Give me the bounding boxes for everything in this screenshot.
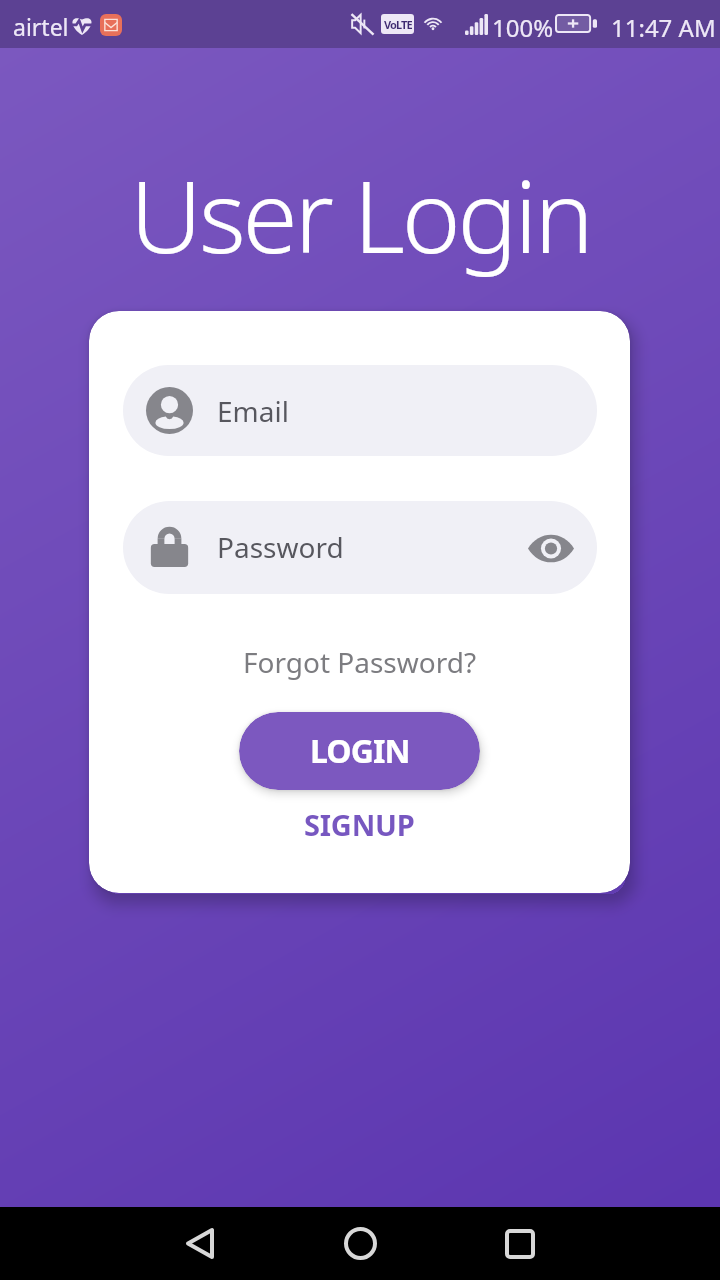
- button[interactable]: SIGNUP: [296, 802, 423, 847]
- button[interactable]: Recents: [485, 1207, 555, 1280]
- staticText: User Login: [130, 146, 591, 282]
- staticText: 11:47 AM: [611, 11, 716, 44]
- button[interactable]: Home: [325, 1207, 395, 1280]
- staticText: SIGNUP: [304, 805, 415, 844]
- button[interactable]: Show password: [520, 517, 582, 579]
- button[interactable]: Back: [165, 1207, 235, 1280]
- staticText: Password: [217, 528, 344, 566]
- staticText: VoLTE: [384, 17, 412, 32]
- button[interactable]: Email: [123, 365, 597, 456]
- button[interactable]: Forgot Password?: [237, 641, 483, 683]
- staticText: 100%: [492, 11, 554, 44]
- staticText: Forgot Password?: [243, 643, 477, 681]
- staticText: airtel: [13, 11, 69, 42]
- staticText: Email: [217, 392, 289, 430]
- button[interactable]: LOGIN: [239, 712, 480, 790]
- button[interactable]: Password: [123, 501, 597, 594]
- staticText: LOGIN: [310, 729, 410, 773]
